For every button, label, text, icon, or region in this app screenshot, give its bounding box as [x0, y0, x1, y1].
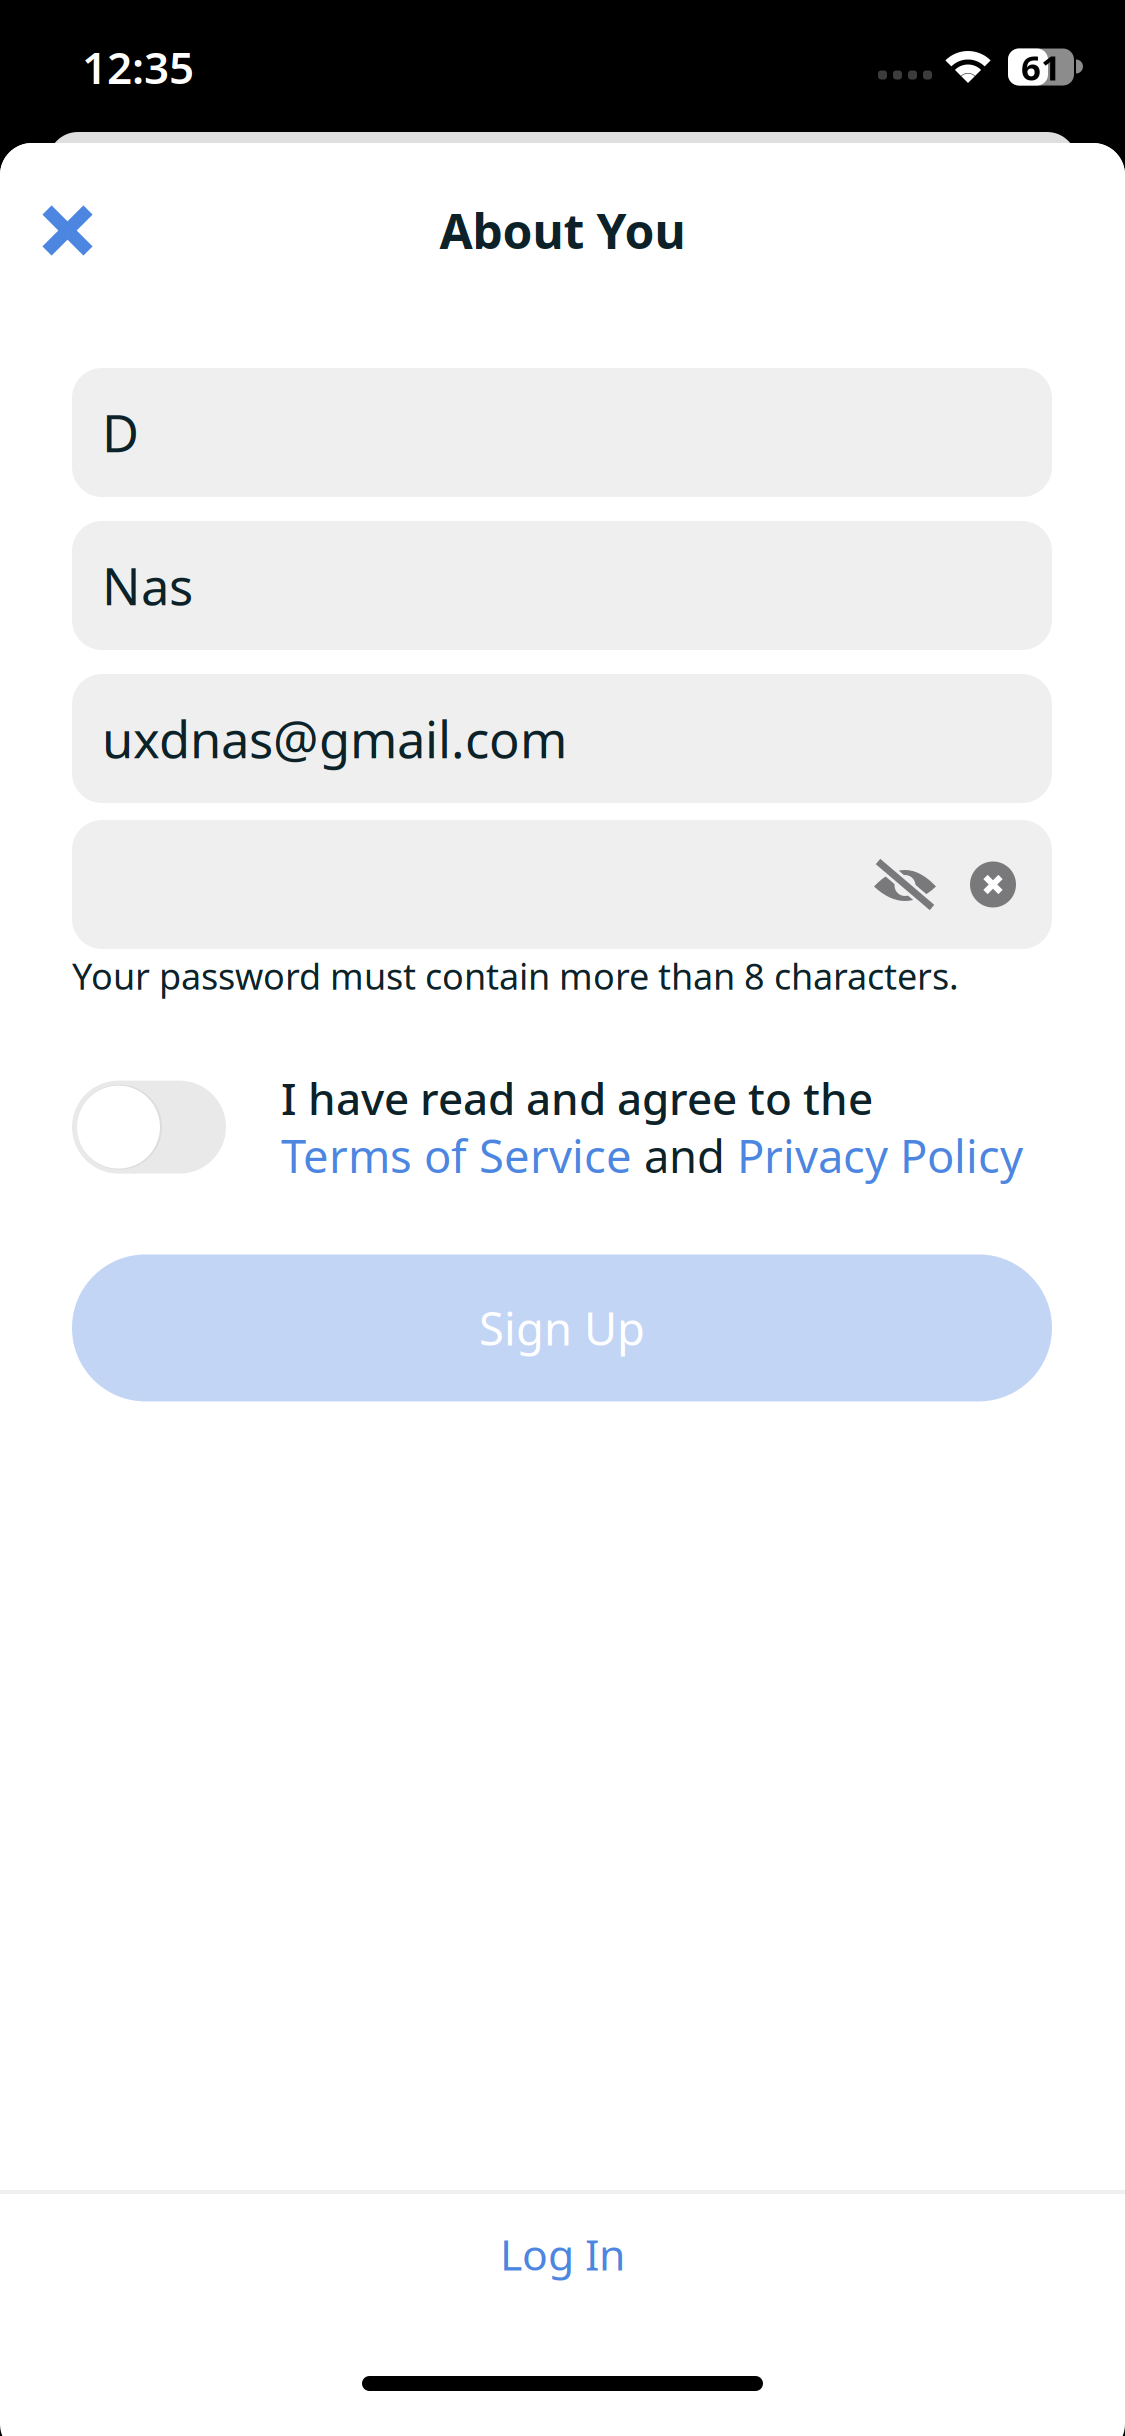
staticText: I have read and agree to the [281, 1069, 873, 1127]
staticText: and [632, 1125, 737, 1185]
button[interactable]: Privacy Policy [737, 1125, 1023, 1185]
button[interactable]: Show password [874, 859, 936, 909]
staticText: Privacy Policy [737, 1125, 1023, 1185]
staticText: Terms of Service [281, 1125, 632, 1185]
button[interactable]: Agree to terms [72, 1081, 226, 1174]
staticText: uxdnas@gmail.com [102, 705, 567, 772]
staticText: Your password must contain more than 8 c… [72, 952, 959, 1000]
staticText: 12:35 [82, 38, 194, 96]
button[interactable]: Log In [0, 2194, 1125, 2314]
button[interactable]: Clear password [969, 860, 1017, 908]
button[interactable]: Close [0, 183, 119, 278]
button[interactable]: Terms of Service [281, 1125, 632, 1185]
staticText: 61 [1021, 44, 1061, 90]
button[interactable]: Sign Up [72, 1254, 1052, 1401]
staticText: Nas [102, 552, 193, 619]
staticText: Log In [500, 2226, 625, 2282]
staticText: Sign Up [479, 1298, 645, 1358]
staticText: About You [439, 199, 685, 262]
staticText: D [102, 399, 139, 466]
